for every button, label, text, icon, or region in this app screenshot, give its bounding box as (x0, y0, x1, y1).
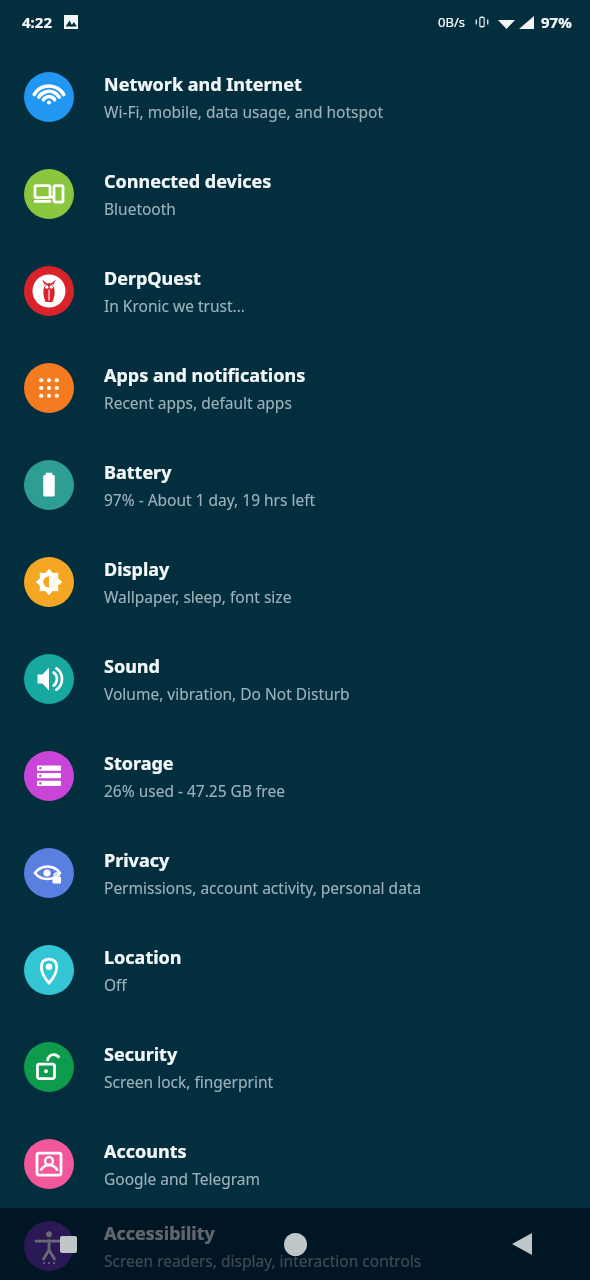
button[interactable]: Recent apps (44, 1220, 92, 1268)
button[interactable]: Battery (0, 436, 590, 533)
staticText: Connected devices (104, 169, 272, 194)
staticText: 26% used - 47.25 GB free (104, 780, 285, 801)
staticText: 0B/s (438, 13, 465, 31)
button[interactable]: Apps and notifications (0, 339, 590, 436)
staticText: Bluetooth (104, 198, 176, 219)
button[interactable]: Sound (0, 630, 590, 727)
button[interactable]: Accessibility (0, 1212, 590, 1280)
staticText: Storage (104, 751, 174, 776)
staticText: Screen lock, fingerprint (104, 1071, 274, 1092)
staticText: Wi-Fi, mobile, data usage, and hotspot (104, 101, 383, 122)
staticText: Google and Telegram (104, 1168, 261, 1189)
staticText: Volume, vibration, Do Not Disturb (104, 683, 350, 704)
staticText: Recent apps, default apps (104, 392, 292, 413)
staticText: Battery (104, 460, 172, 485)
button[interactable]: DerpQuest (0, 242, 590, 339)
staticText: 4:22 (22, 12, 52, 32)
button[interactable]: Network and Internet (0, 48, 590, 145)
staticText: Accounts (104, 1139, 187, 1164)
staticText: Accessibility (104, 1221, 215, 1246)
button[interactable]: Accounts (0, 1115, 590, 1212)
staticText: 97% (541, 12, 572, 32)
button[interactable]: Back (498, 1220, 546, 1268)
button[interactable]: Privacy (0, 824, 590, 921)
staticText: Off (104, 974, 127, 995)
staticText: Sound (104, 654, 160, 679)
staticText: 97% - About 1 day, 19 hrs left (104, 489, 316, 510)
staticText: Privacy (104, 848, 170, 873)
staticText: Permissions, account activity, personal … (104, 877, 422, 898)
button[interactable]: Home (271, 1220, 319, 1268)
button[interactable]: Security (0, 1018, 590, 1115)
button[interactable]: Storage (0, 727, 590, 824)
staticText: Security (104, 1042, 178, 1067)
staticText: Apps and notifications (104, 363, 306, 388)
staticText: Network and Internet (104, 72, 302, 97)
staticText: Display (104, 557, 170, 582)
staticText: Location (104, 945, 182, 970)
staticText: Screen readers, display, interaction con… (104, 1250, 422, 1271)
button[interactable]: Connected devices (0, 145, 590, 242)
staticText: Wallpaper, sleep, font size (104, 586, 292, 607)
button[interactable]: Display (0, 533, 590, 630)
staticText: In Kronic we trust... (104, 295, 245, 316)
staticText: DerpQuest (104, 266, 201, 291)
button[interactable]: Location (0, 921, 590, 1018)
